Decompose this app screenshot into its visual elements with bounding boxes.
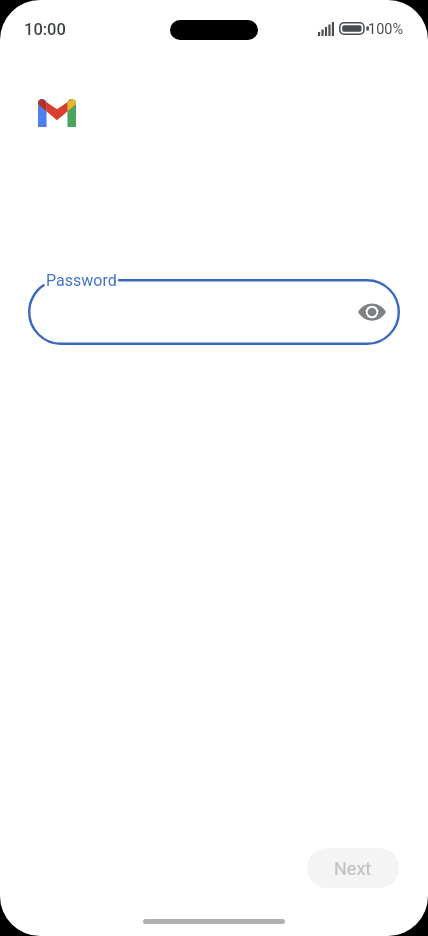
button[interactable]: Show password: [352, 292, 392, 332]
button[interactable]: Next: [307, 848, 399, 888]
staticText: 10:00: [24, 20, 66, 39]
staticText: Next: [334, 858, 372, 879]
staticText: 100%: [368, 21, 404, 38]
staticText: Password: [46, 271, 117, 290]
